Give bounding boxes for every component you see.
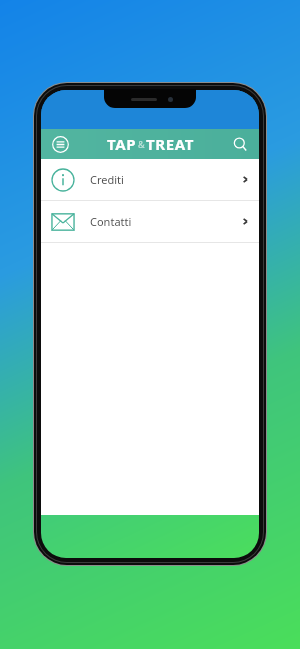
button[interactable]: Search [227, 131, 253, 157]
button[interactable]: Contatti [41, 201, 259, 242]
staticText: & [138, 138, 145, 150]
button[interactable]: Menu [47, 131, 73, 157]
staticText: Crediti [90, 172, 240, 187]
staticText: Contatti [90, 214, 240, 229]
staticText: TREAT [146, 134, 194, 154]
button[interactable]: Crediti [41, 159, 259, 200]
staticText: TAP [107, 134, 137, 154]
